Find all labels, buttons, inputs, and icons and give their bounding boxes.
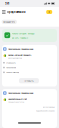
staticText: Только сегодня: вклады <box>12 32 35 35</box>
staticText: Вклад «Лучший процент» <box>8 54 31 56</box>
staticText: Ставка 22% <box>6 61 15 64</box>
staticText: до 18% годовых <box>43 106 55 108</box>
staticText: Пополнение <box>6 66 16 69</box>
staticText: до 22% годовых <box>12 36 28 39</box>
button[interactable]: Только сегодня: вклады <box>2 29 57 42</box>
staticText: Персональное предложение <box>8 92 33 94</box>
staticText: Открыть <box>24 79 33 82</box>
staticText: Подробнее об условиях <box>36 109 55 112</box>
staticText: Персональное предложение <box>8 48 33 50</box>
staticText: Процент на остаток <box>8 101 24 103</box>
staticText: Предложения <box>7 10 25 14</box>
button[interactable]: Вклады и счета <box>2 20 17 24</box>
button[interactable]: Bonus points <box>46 7 52 17</box>
staticText: Накопительный счёт <box>8 98 27 100</box>
staticText: Срок от 1 месяца <box>6 71 19 74</box>
staticText: до 22% на 3 месяца <box>8 57 22 59</box>
staticText: Вклады и счета <box>3 21 15 23</box>
staticText: 9:41 <box>5 2 9 5</box>
button[interactable]: Menu <box>2 7 6 17</box>
button[interactable]: Открыть <box>19 78 39 83</box>
